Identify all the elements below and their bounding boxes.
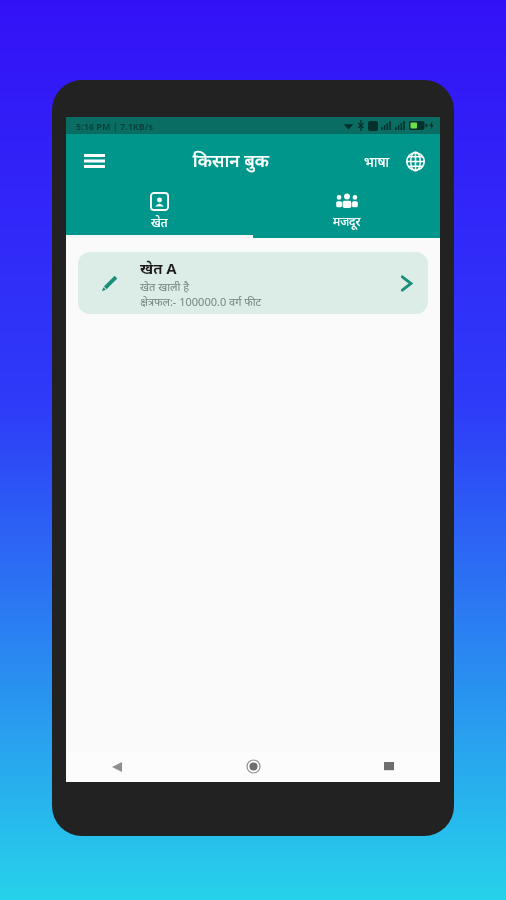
button[interactable]: Change language (398, 144, 432, 178)
staticText: खेत खाली है (140, 279, 189, 294)
button[interactable]: Home (236, 751, 270, 782)
button[interactable]: Back (100, 751, 134, 782)
button[interactable]: खेत (66, 187, 253, 235)
button[interactable]: खेत A (78, 252, 428, 314)
button[interactable]: Open navigation menu (76, 143, 112, 179)
staticText: खेत A (140, 258, 177, 278)
staticText: 5:16 PM | 7.1KB/s (76, 120, 154, 132)
button[interactable]: भाषा (358, 146, 396, 177)
staticText: भाषा (364, 152, 390, 171)
staticText: खेत (151, 214, 168, 230)
staticText: किसान बुक (193, 148, 269, 173)
button[interactable]: मजदूर (253, 187, 440, 235)
staticText: क्षेत्रफल:- 100000.0 वर्ग फीट (140, 294, 262, 309)
button[interactable]: Recent apps (372, 751, 406, 782)
staticText: मजदूर (333, 213, 361, 229)
